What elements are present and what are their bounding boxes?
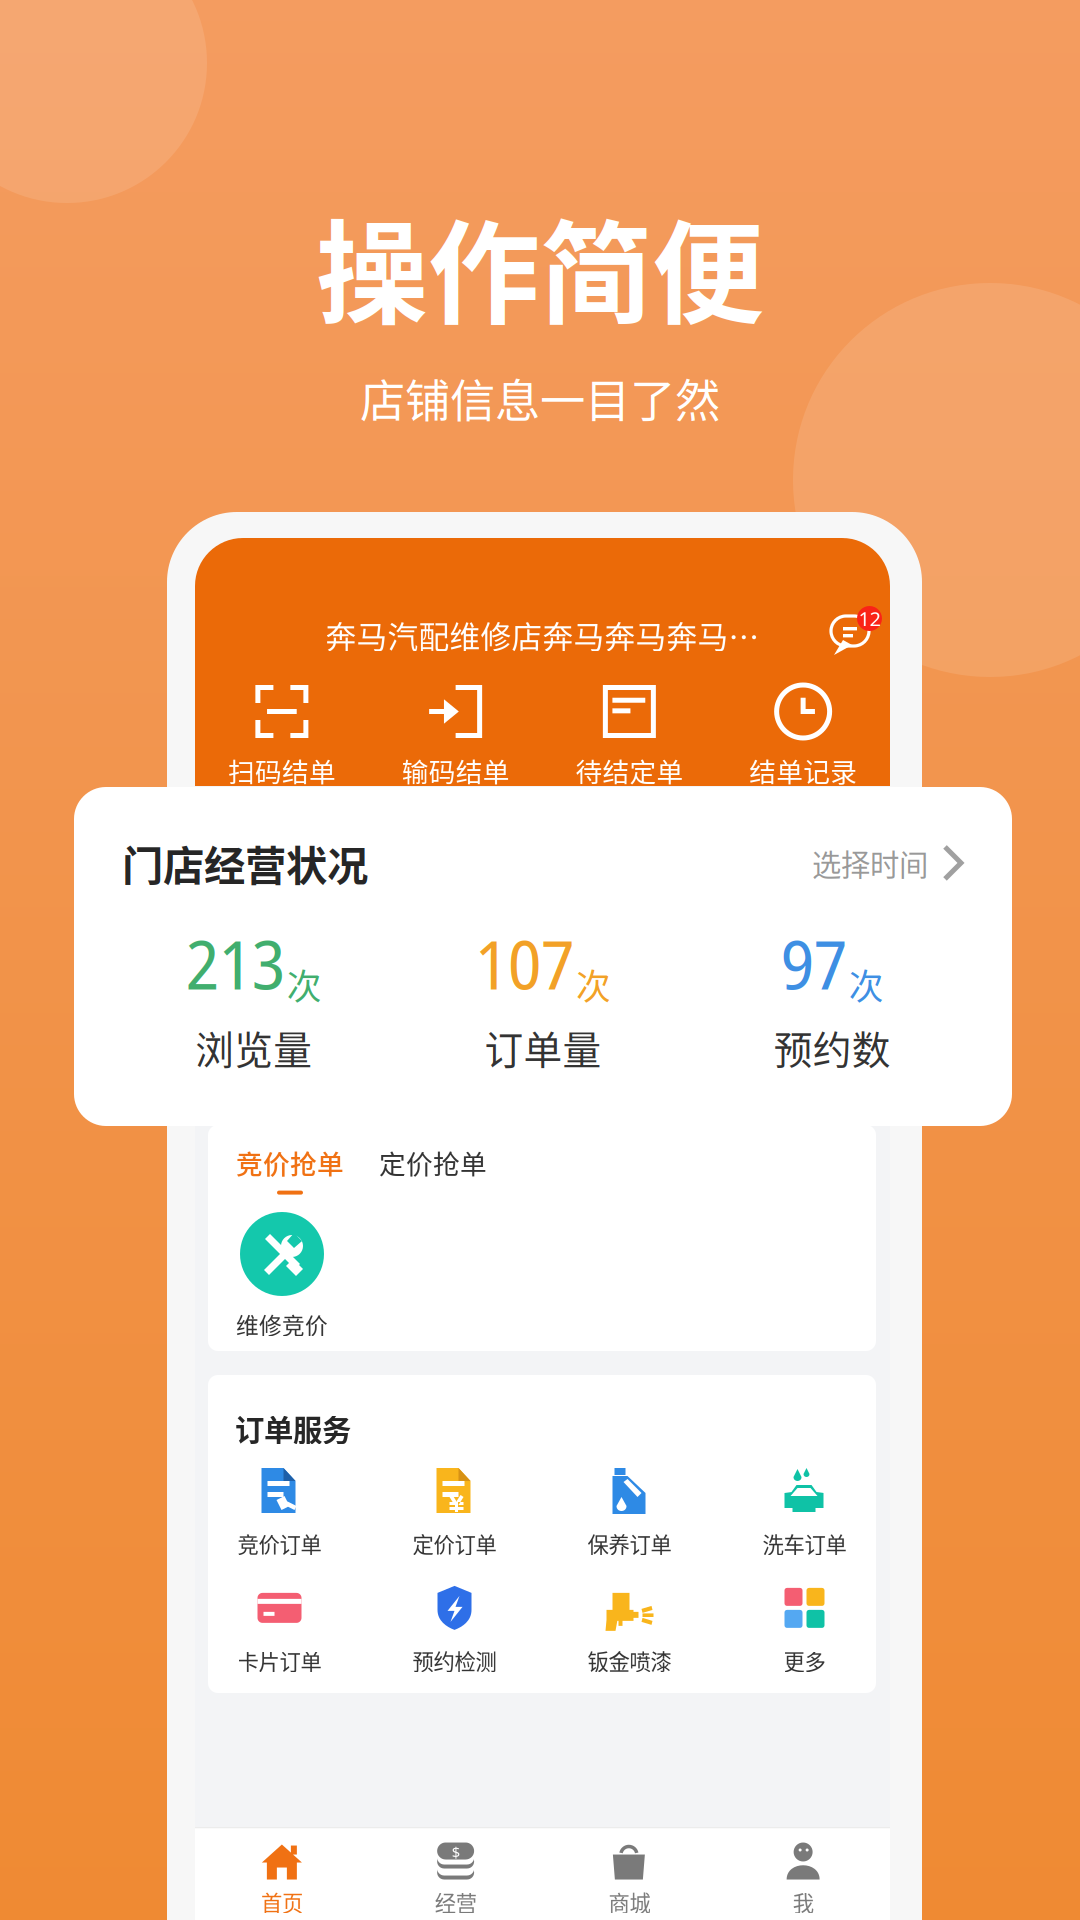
button[interactable]: 选择时间 [812,842,964,884]
staticText: 结单记录 [749,751,857,790]
button[interactable]: 首页 [195,1828,369,1920]
staticText: 更多 [783,1645,825,1676]
button[interactable]: 扫码结单 [195,685,369,790]
staticText: 预约数 [774,1019,891,1075]
staticText: 操作简便 [316,185,764,347]
button[interactable]: 消息 [831,610,889,662]
staticText: 首页 [261,1886,303,1917]
button[interactable]: 钣金喷漆 [542,1584,717,1676]
staticText: 选择时间 [812,842,928,884]
button[interactable]: 竞价抢单 [236,1143,344,1195]
staticText: 扫码结单 [228,751,336,790]
button[interactable]: 预约检测 [367,1584,542,1676]
button[interactable]: 洗车订单 [717,1467,892,1559]
staticText: 预约检测 [412,1645,496,1676]
staticText: 经营 [435,1886,477,1917]
staticText: 维修竞价 [236,1308,328,1341]
staticText: 次 [287,959,322,1009]
button[interactable]: 商城 [542,1828,716,1920]
staticText: 次 [576,959,611,1009]
staticText: 保养订单 [587,1528,671,1559]
button[interactable]: 待结定单 [542,685,716,790]
staticText: 12 [858,605,880,632]
button[interactable]: 我 [716,1828,890,1920]
button[interactable]: $ [369,1828,543,1920]
staticText: 107 [475,917,574,1009]
button[interactable]: 卡片订单 [192,1584,367,1676]
button[interactable]: 保养订单 [542,1467,717,1559]
staticText: 97 [781,917,847,1009]
staticText: 我 [793,1886,814,1917]
button[interactable]: 更多 [717,1584,892,1676]
staticText: 订单量 [484,1019,601,1075]
staticText: 店铺信息一目了然 [360,365,720,431]
staticText: 待结定单 [575,751,683,790]
staticText: 订单服务 [235,1407,351,1449]
staticText: 竞价订单 [237,1528,321,1559]
staticText: 定价订单 [412,1528,496,1559]
button[interactable]: 输码结单 [369,685,543,790]
staticText: 洗车订单 [762,1528,846,1559]
staticText: 竞价抢单 [236,1143,344,1182]
staticText: 商城 [608,1886,650,1917]
staticText: 浏览量 [195,1019,312,1075]
staticText: 次 [849,959,884,1009]
staticText: 213 [186,917,285,1009]
button[interactable]: 定价订单 [367,1467,542,1559]
button[interactable]: 结单记录 [716,685,890,790]
staticText: 奔马汽配维修店奔马奔马奔马… [325,613,759,657]
button[interactable]: 竞价订单 [192,1467,367,1559]
button[interactable]: 定价抢单 [379,1143,487,1182]
staticText: 输码结单 [402,751,510,790]
staticText: 门店经营状况 [122,833,368,893]
staticText: 钣金喷漆 [587,1645,671,1676]
staticText: 卡片订单 [237,1645,321,1676]
staticText: $ [452,1842,460,1862]
staticText: 定价抢单 [379,1143,487,1182]
button[interactable]: 维修竞价 [236,1212,328,1341]
